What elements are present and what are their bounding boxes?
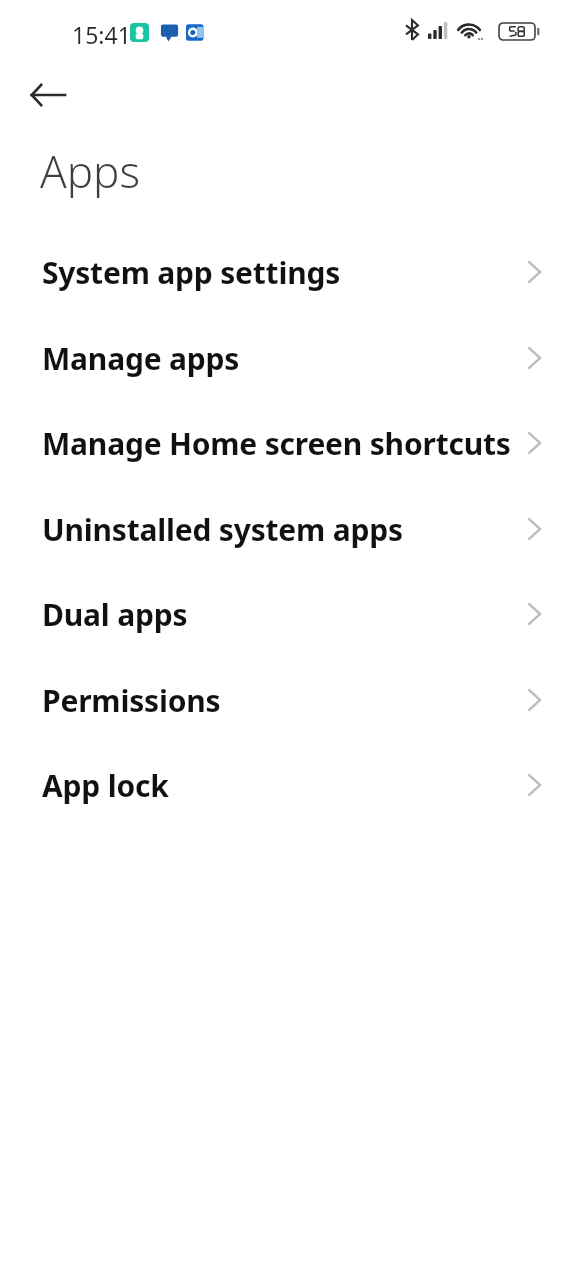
staticText: System app settings bbox=[42, 252, 526, 293]
button[interactable]: Permissions bbox=[0, 657, 576, 743]
button[interactable]: Back bbox=[22, 69, 74, 121]
staticText: Manage Home screen shortcuts bbox=[42, 423, 526, 464]
button[interactable]: Dual apps bbox=[0, 571, 576, 657]
staticText: Manage apps bbox=[42, 338, 526, 379]
staticText: App lock bbox=[42, 765, 526, 806]
button[interactable]: System app settings bbox=[0, 229, 576, 315]
staticText: Apps bbox=[40, 141, 141, 201]
staticText: Uninstalled system apps bbox=[42, 509, 526, 550]
button[interactable]: Manage Home screen shortcuts bbox=[0, 400, 576, 486]
button[interactable]: Manage apps bbox=[0, 315, 576, 401]
button[interactable]: Uninstalled system apps bbox=[0, 486, 576, 572]
staticText: Permissions bbox=[42, 680, 526, 721]
button[interactable]: App lock bbox=[0, 742, 576, 828]
staticText: 15:41 bbox=[72, 19, 131, 50]
staticText: Dual apps bbox=[42, 594, 526, 635]
